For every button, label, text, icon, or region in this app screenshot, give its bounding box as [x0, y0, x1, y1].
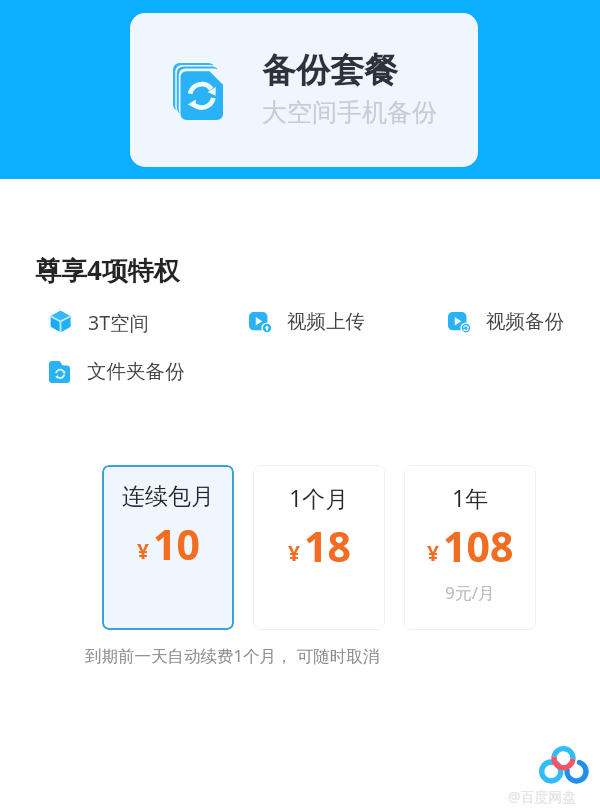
staticText: 10	[153, 516, 200, 572]
staticText: 视频备份	[486, 309, 564, 333]
staticText: 18	[304, 518, 351, 574]
button[interactable]: Backup package	[130, 13, 478, 167]
staticText: @百度网盘	[508, 787, 577, 806]
other: Baidu Netdisk logo	[539, 746, 589, 784]
staticText: ¥	[137, 537, 150, 566]
button[interactable]: 3T空间	[50, 309, 149, 333]
other: Backup package	[173, 63, 223, 120]
staticText: 尊享4项特权	[35, 252, 180, 288]
staticText: 1个月	[289, 482, 349, 513]
staticText: 108	[443, 518, 514, 574]
staticText: 到期前一天自动续费1个月， 可随时取消	[85, 644, 380, 667]
staticText: 文件夹备份	[87, 359, 185, 383]
button[interactable]: 视频上传	[249, 309, 365, 333]
staticText: 大空间手机备份	[262, 97, 437, 128]
staticText: 9元/月	[445, 581, 496, 604]
button[interactable]: 1年	[404, 465, 536, 630]
staticText: ¥	[288, 539, 301, 568]
button[interactable]: 1个月	[253, 465, 385, 630]
staticText: 连续包月	[122, 482, 214, 511]
staticText: 1年	[452, 482, 489, 513]
button[interactable]: 文件夹备份	[49, 359, 185, 383]
staticText: 备份套餐	[262, 49, 398, 92]
staticText: 3T空间	[88, 309, 149, 333]
button[interactable]: 连续包月	[102, 465, 234, 630]
staticText: ¥	[427, 539, 440, 568]
button[interactable]: 视频备份	[448, 309, 564, 333]
staticText: 视频上传	[287, 309, 365, 333]
